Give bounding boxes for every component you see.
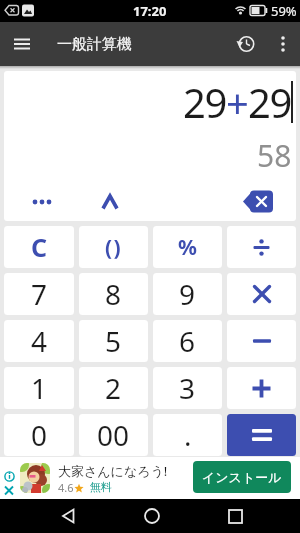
button[interactable]: C — [4, 226, 74, 268]
button[interactable] — [227, 226, 296, 268]
staticText: . — [184, 416, 192, 454]
button[interactable] — [0, 22, 44, 66]
button[interactable] — [272, 22, 294, 66]
staticText: 59% — [271, 2, 297, 20]
button[interactable]: 5 — [79, 320, 148, 362]
button[interactable] — [227, 273, 296, 315]
button[interactable]: 6 — [153, 320, 222, 362]
staticText: 4 — [31, 322, 48, 360]
staticText: 2 — [105, 369, 122, 407]
button[interactable] — [215, 499, 255, 533]
staticText: 9 — [179, 275, 196, 313]
staticText: 無料 — [90, 480, 112, 494]
staticText: 3 — [179, 369, 196, 407]
button[interactable] — [95, 189, 125, 213]
staticText: 大家さんになろう! — [58, 462, 168, 480]
button[interactable]: インストール — [193, 461, 291, 493]
staticText: 17:20 — [133, 2, 167, 20]
button[interactable]: 7 — [4, 273, 74, 315]
button[interactable]: 0 — [4, 414, 74, 456]
button[interactable]: 00 — [79, 414, 148, 456]
staticText: 29 — [248, 75, 291, 129]
staticText: 8 — [105, 275, 122, 313]
button[interactable] — [48, 499, 88, 533]
button[interactable] — [227, 320, 296, 362]
button[interactable]: () — [79, 226, 148, 268]
staticText: 58 — [257, 135, 292, 176]
staticText: 1 — [31, 369, 48, 407]
staticText: 0 — [31, 416, 48, 454]
staticText: インストール — [202, 469, 282, 485]
button[interactable]: % — [153, 226, 222, 268]
button[interactable]: 3 — [153, 367, 222, 409]
staticText: 4.6 — [58, 480, 74, 495]
button[interactable]: 9 — [153, 273, 222, 315]
button[interactable] — [231, 22, 262, 66]
staticText: + — [226, 75, 248, 129]
button[interactable]: . — [153, 414, 222, 456]
button[interactable] — [227, 414, 296, 456]
staticText: 5 — [105, 322, 122, 360]
button[interactable]: 2 — [79, 367, 148, 409]
staticText: 7 — [31, 275, 48, 313]
staticText: 00 — [97, 416, 130, 454]
button[interactable] — [243, 190, 273, 213]
button[interactable]: 1 — [4, 367, 74, 409]
button[interactable] — [4, 189, 50, 213]
staticText: 一般計算機 — [57, 35, 132, 54]
button[interactable]: 8 — [79, 273, 148, 315]
staticText: C — [31, 230, 48, 264]
staticText: 29 — [183, 75, 226, 129]
staticText: 6 — [179, 322, 196, 360]
staticText: () — [105, 233, 123, 262]
button[interactable] — [227, 367, 296, 409]
button[interactable]: 4 — [4, 320, 74, 362]
button[interactable] — [20, 463, 50, 493]
button[interactable] — [132, 499, 172, 533]
staticText: % — [178, 233, 197, 262]
